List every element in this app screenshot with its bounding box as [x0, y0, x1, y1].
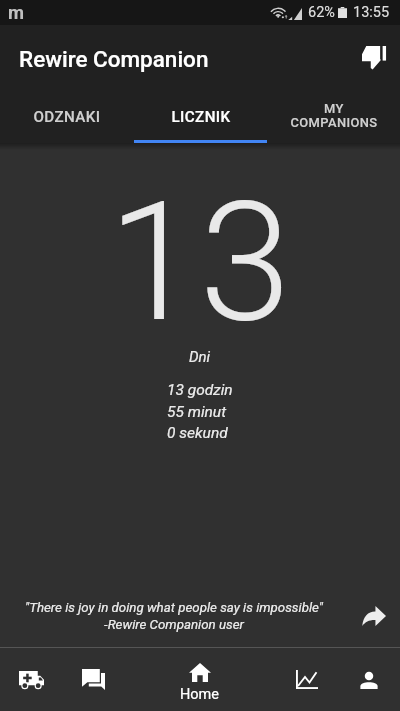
staticText: Rewire Companion — [19, 46, 209, 72]
staticText: 13 godzin 55 minut 0 sekund — [167, 381, 233, 441]
button[interactable]: MY COMPANIONS — [267, 90, 400, 143]
button[interactable]: Forum — [62, 648, 124, 711]
button[interactable]: Profile — [338, 648, 400, 711]
staticText: LICZNIK — [171, 108, 231, 126]
button[interactable]: Share — [354, 596, 394, 636]
button[interactable]: LICZNIK — [134, 90, 267, 143]
staticText: "There is joy in doing what people say i… — [25, 600, 323, 632]
staticText: MY COMPANIONS — [290, 101, 378, 130]
staticText: 13 — [108, 166, 292, 359]
button[interactable]: Home — [124, 648, 276, 711]
staticText: 62% — [308, 4, 335, 21]
button[interactable]: Thumbs down — [352, 36, 396, 80]
button[interactable]: Statistics — [276, 648, 338, 711]
button[interactable]: ODZNAKI — [0, 90, 134, 143]
staticText: 13:55 — [353, 4, 390, 21]
staticText: ODZNAKI — [33, 108, 101, 126]
staticText: m — [8, 2, 25, 24]
staticText: Dni — [189, 348, 211, 366]
staticText: Home — [180, 686, 220, 703]
button[interactable]: Emergency — [0, 648, 62, 711]
